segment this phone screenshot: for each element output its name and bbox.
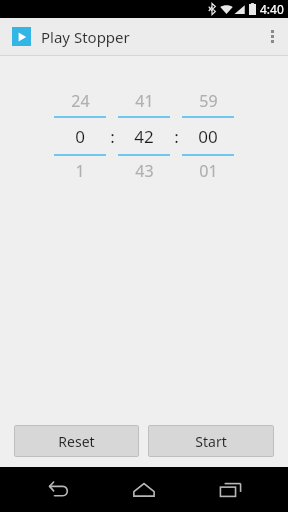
- button[interactable]: 24: [54, 86, 106, 186]
- staticText: 41: [135, 90, 154, 112]
- staticText: 01: [199, 160, 218, 182]
- staticText: 00: [198, 125, 218, 148]
- staticText: Reset: [58, 432, 95, 451]
- staticText: 43: [135, 160, 154, 182]
- staticText: Start: [195, 432, 227, 451]
- button[interactable]: Back: [30, 467, 86, 512]
- staticText: 1: [75, 160, 85, 182]
- button[interactable]: Start: [148, 425, 274, 457]
- button[interactable]: Home: [116, 467, 172, 512]
- button[interactable]: More options: [256, 18, 288, 55]
- staticText: :: [174, 125, 179, 148]
- button[interactable]: 59: [182, 86, 234, 186]
- staticText: 24: [71, 90, 90, 112]
- staticText: Play Stopper: [41, 27, 130, 47]
- button[interactable]: 41: [118, 86, 170, 186]
- staticText: 4:40: [260, 1, 284, 17]
- staticText: 42: [134, 125, 154, 148]
- staticText: :: [110, 125, 115, 148]
- staticText: 0: [75, 125, 85, 148]
- button[interactable]: Recent apps: [202, 467, 258, 512]
- staticText: 59: [199, 90, 218, 112]
- button[interactable]: Reset: [14, 425, 139, 457]
